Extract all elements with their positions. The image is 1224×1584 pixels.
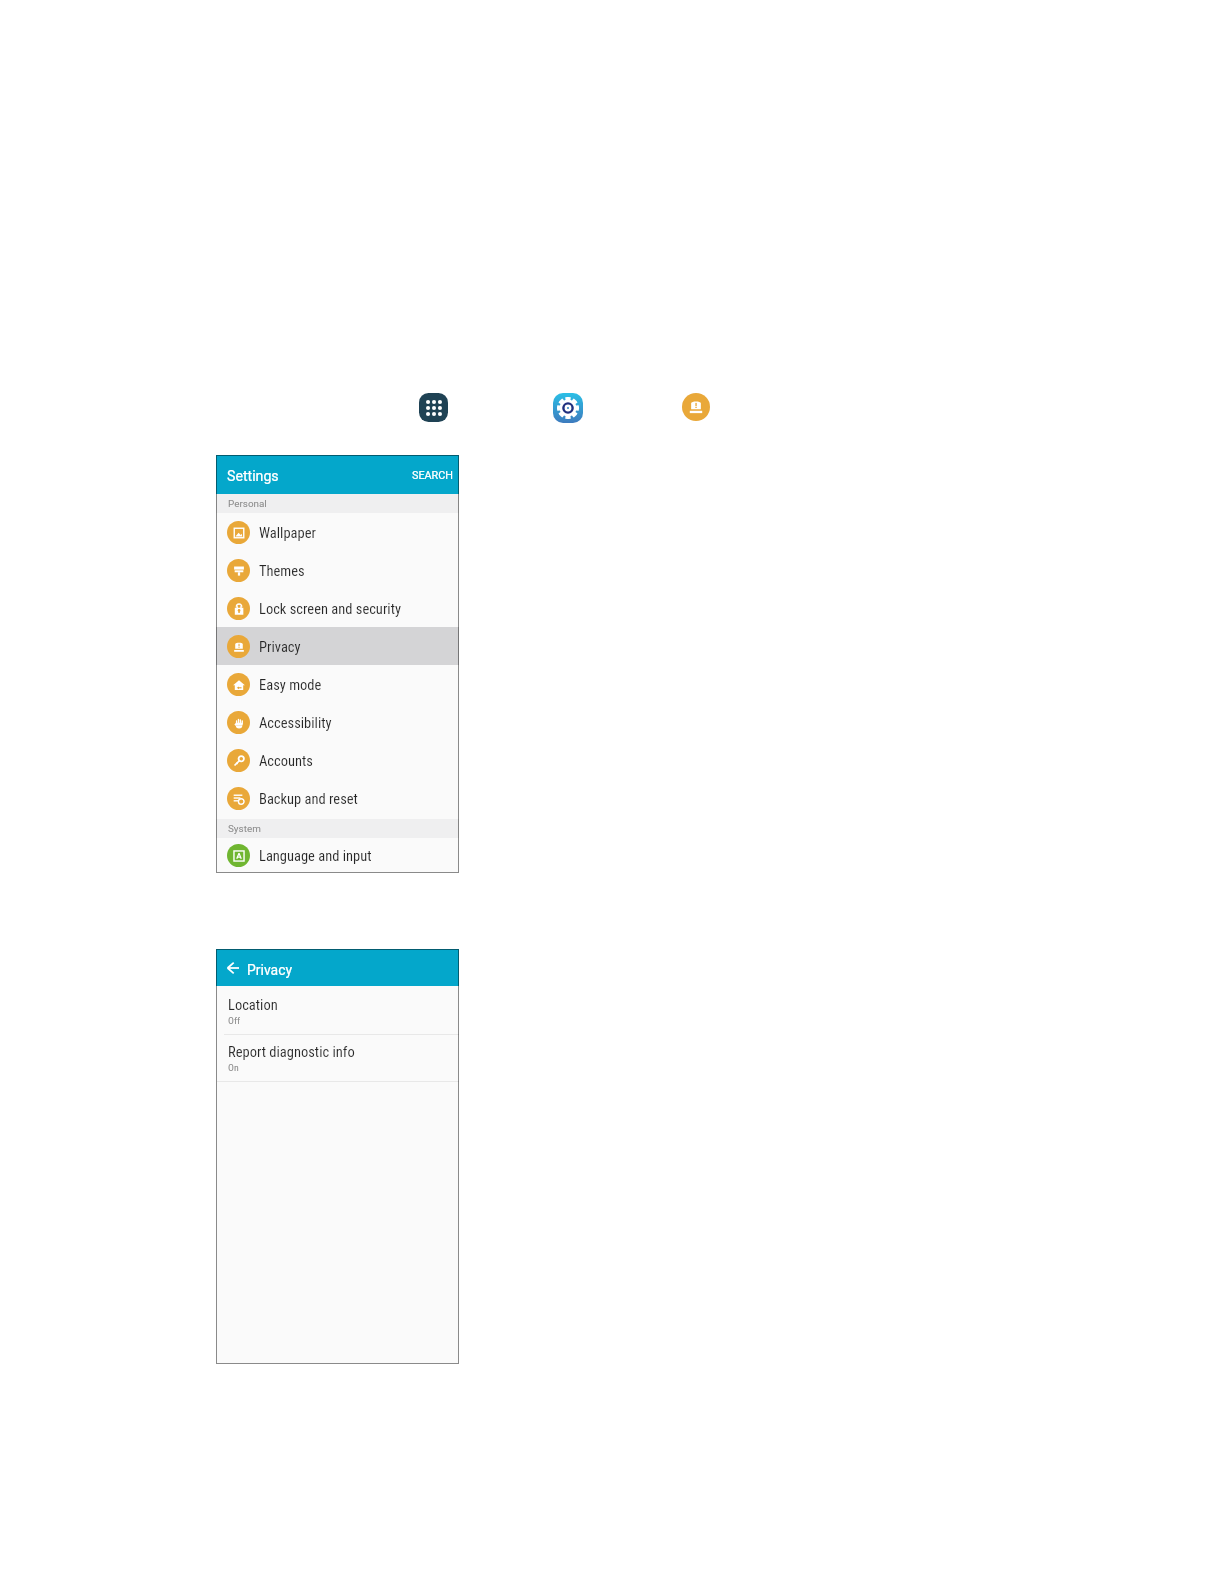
button[interactable]: SEARCH [405, 462, 459, 487]
staticText: Lock screen and security [259, 601, 401, 618]
staticText: Wallpaper [259, 525, 316, 542]
button[interactable]: Privacy [682, 393, 710, 421]
button[interactable]: Accessibility [216, 703, 459, 741]
button[interactable]: Lock screen and security [216, 589, 459, 627]
button[interactable]: Accounts [216, 741, 459, 779]
staticText: Backup and reset [259, 791, 358, 808]
staticText: Themes [259, 563, 305, 580]
button[interactable]: Wallpaper [216, 513, 459, 551]
staticText: Off [228, 1015, 241, 1026]
button[interactable]: Easy mode [216, 665, 459, 703]
button[interactable]: Backup and reset [216, 779, 459, 817]
button[interactable]: Report diagnostic info [216, 1035, 459, 1081]
button[interactable]: Settings [553, 393, 583, 423]
button[interactable]: Language and input [216, 838, 459, 873]
button[interactable]: Location [216, 986, 459, 1034]
button[interactable]: Themes [216, 551, 459, 589]
staticText: Language and input [259, 848, 372, 865]
button[interactable]: Privacy [216, 627, 459, 665]
staticText: Report diagnostic info [228, 1044, 355, 1061]
staticText: Location [228, 997, 278, 1014]
staticText: Privacy [259, 639, 301, 656]
staticText: System [228, 823, 261, 835]
staticText: On [228, 1062, 239, 1073]
staticText: Accessibility [259, 715, 332, 732]
staticText: Privacy [247, 962, 293, 978]
staticText: Easy mode [259, 677, 322, 694]
button[interactable]: Apps [419, 393, 448, 422]
staticText: Settings [227, 468, 279, 485]
button[interactable]: Back [224, 959, 242, 977]
staticText: SEARCH [412, 469, 453, 482]
staticText: Accounts [259, 753, 313, 770]
staticText: Personal [228, 498, 267, 510]
